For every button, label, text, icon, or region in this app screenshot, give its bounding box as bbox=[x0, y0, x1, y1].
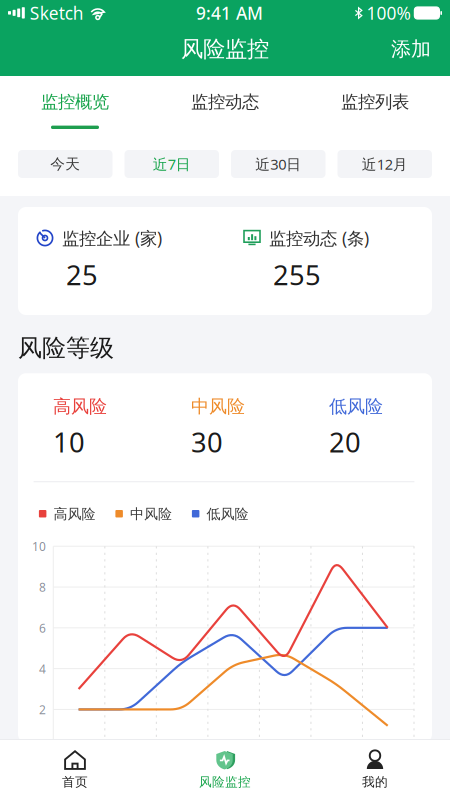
staticText: 中风险 bbox=[130, 505, 172, 523]
staticText: 低风险 bbox=[206, 505, 248, 523]
staticText: 10 bbox=[32, 538, 46, 554]
staticText: 30 bbox=[191, 423, 223, 460]
staticText: 近12月 bbox=[362, 154, 408, 174]
staticText: 高风险 bbox=[53, 505, 95, 523]
staticText: 监控列表 bbox=[341, 91, 409, 113]
staticText: 4 bbox=[39, 661, 46, 677]
staticText: 添加 bbox=[391, 36, 431, 62]
staticText: 近7日 bbox=[153, 154, 191, 174]
staticText: 高风险 bbox=[53, 395, 107, 418]
staticText: 今天 bbox=[50, 155, 80, 173]
staticText: 2 bbox=[39, 701, 46, 718]
button[interactable]: 监控概览 bbox=[0, 76, 150, 143]
button[interactable]: 监控动态 bbox=[150, 76, 300, 143]
staticText: 10 bbox=[53, 423, 85, 460]
staticText: 风险监控 bbox=[199, 774, 251, 790]
button[interactable]: 监控列表 bbox=[300, 76, 450, 143]
button[interactable]: 我的 bbox=[300, 740, 450, 800]
staticText: 近30日 bbox=[255, 154, 301, 174]
staticText: 监控动态 bbox=[191, 91, 259, 113]
button[interactable]: 添加 bbox=[375, 27, 450, 71]
staticText: 风险等级 bbox=[18, 333, 114, 363]
staticText: 9:41 AM bbox=[196, 1, 263, 25]
staticText: 首页 bbox=[62, 774, 88, 790]
staticText: 6 bbox=[39, 620, 46, 636]
staticText: 20 bbox=[329, 423, 361, 460]
staticText: 中风险 bbox=[191, 395, 245, 418]
staticText: 风险监控 bbox=[181, 35, 269, 63]
staticText: 监控动态 (条) bbox=[269, 226, 369, 250]
staticText: Sketch bbox=[30, 1, 84, 25]
button[interactable]: 近7日 bbox=[124, 150, 219, 178]
staticText: 255 bbox=[273, 256, 321, 293]
staticText: 监控企业 (家) bbox=[62, 226, 162, 250]
staticText: 100% bbox=[366, 1, 410, 25]
button[interactable]: 近12月 bbox=[337, 150, 432, 178]
staticText: 监控概览 bbox=[41, 91, 109, 113]
button[interactable]: 首页 bbox=[0, 740, 150, 800]
staticText: 25 bbox=[66, 256, 98, 293]
staticText: 我的 bbox=[362, 774, 388, 790]
staticText: 8 bbox=[39, 579, 46, 595]
staticText: 低风险 bbox=[329, 395, 383, 418]
button[interactable]: 今天 bbox=[18, 150, 112, 178]
button[interactable]: 近30日 bbox=[231, 150, 325, 178]
button[interactable]: 风险监控 bbox=[150, 740, 300, 800]
